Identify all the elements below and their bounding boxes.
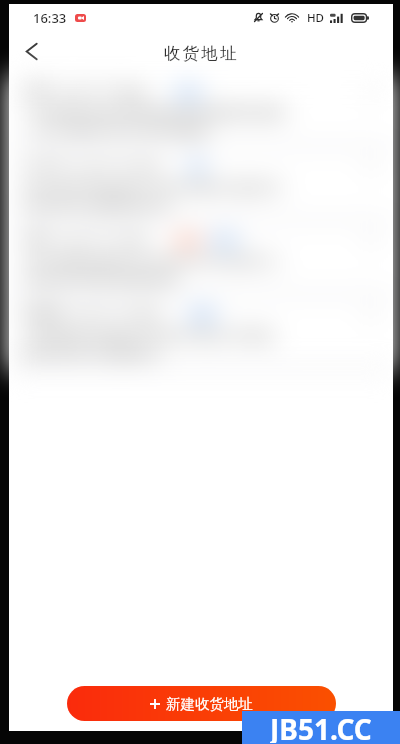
staticText: C座22层2208室 国贸桥东南	[23, 271, 178, 288]
button[interactable]: 陈美丽	[9, 297, 393, 365]
staticText: 北京市朝阳区建国门外大街甲6号中环世贸中心	[23, 253, 281, 270]
staticText: 陈美丽	[23, 305, 65, 323]
staticText: 06室 靠近古荡地铁站B出口	[23, 197, 174, 214]
button[interactable]: 王小芳	[9, 149, 393, 217]
button[interactable]: 张伟	[9, 223, 393, 291]
staticText: 江苏省南京市鼓楼区汉口路22号南京大学紫金	[23, 327, 275, 344]
staticText: 一道12号楼801室 科兴科学园B栋	[23, 122, 208, 139]
staticText: 新建收货地址	[166, 695, 253, 713]
button[interactable]: Back	[9, 31, 53, 75]
button[interactable]: 李明	[9, 75, 393, 143]
button[interactable]: 新建收货地址	[67, 686, 336, 721]
staticText: JB51.CC	[270, 710, 372, 743]
staticText: 收货地址	[164, 43, 239, 64]
staticText: 16:33	[33, 9, 67, 27]
staticText: 广东省深圳市南山区粤海街道科技园南区高新南	[23, 105, 286, 121]
staticText: 138 **** 8866	[59, 83, 147, 101]
staticText: HD	[307, 10, 325, 26]
staticText: 楼305室 西门旁边教学区	[23, 345, 161, 362]
staticText: 浙江省杭州市西湖区文三路汇林商务大厦A座15	[23, 179, 283, 196]
